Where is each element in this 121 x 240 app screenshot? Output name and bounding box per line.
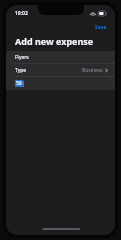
button[interactable]: Type xyxy=(6,64,115,77)
staticText: Flyers xyxy=(15,54,29,61)
button[interactable]: 50 xyxy=(6,77,115,90)
staticText: Save xyxy=(95,24,107,31)
button[interactable]: Save xyxy=(87,22,115,33)
other: Open type picker xyxy=(105,68,108,73)
staticText: Add new expense xyxy=(15,35,94,47)
staticText: Business xyxy=(82,67,103,74)
staticText: Type xyxy=(15,67,27,74)
button[interactable]: Flyers xyxy=(6,51,115,64)
staticText: 10:02 xyxy=(15,10,28,17)
staticText: 50 xyxy=(16,80,22,87)
